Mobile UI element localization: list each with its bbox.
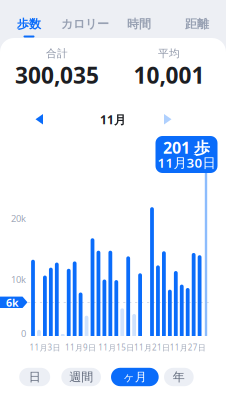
staticText: 時間 xyxy=(127,17,151,31)
staticText: 6k xyxy=(6,295,19,310)
button[interactable]: 距離 xyxy=(169,5,225,43)
staticText: 0 xyxy=(21,327,26,340)
staticText: カロリー xyxy=(61,17,109,31)
button[interactable]: 年 xyxy=(164,368,194,386)
staticText: 11月15日 xyxy=(98,342,134,353)
staticText: 年 xyxy=(173,370,185,384)
staticText: 300,035 xyxy=(15,60,99,90)
staticText: 11月30日 xyxy=(157,154,215,171)
button[interactable]: 前の月 xyxy=(34,108,62,131)
button[interactable]: 日 xyxy=(19,368,50,386)
staticText: 合計 xyxy=(46,47,68,60)
staticText: 10k xyxy=(11,273,26,286)
staticText: 11月9日 xyxy=(65,342,96,353)
staticText: 20k xyxy=(11,212,26,225)
button[interactable]: 歩数 xyxy=(1,5,57,43)
staticText: 歩数 xyxy=(17,17,41,31)
button[interactable]: 次の月 xyxy=(163,108,191,131)
button[interactable]: カロリー xyxy=(57,5,113,43)
staticText: 日 xyxy=(29,370,41,384)
staticText: 201 歩 xyxy=(163,137,210,158)
staticText: 週間 xyxy=(69,370,93,384)
button[interactable]: 週間 xyxy=(61,368,101,386)
staticText: 11月27日 xyxy=(170,342,206,353)
staticText: 10,001 xyxy=(133,60,204,90)
button[interactable]: ヶ月 xyxy=(111,368,159,386)
staticText: 平均 xyxy=(158,47,180,60)
staticText: 距離 xyxy=(185,17,209,31)
staticText: 11月21日 xyxy=(134,342,170,353)
staticText: ヶ月 xyxy=(123,370,147,384)
staticText: 11月3日 xyxy=(29,342,60,353)
staticText: 11月 xyxy=(100,111,126,127)
button[interactable]: 時間 xyxy=(111,5,167,43)
